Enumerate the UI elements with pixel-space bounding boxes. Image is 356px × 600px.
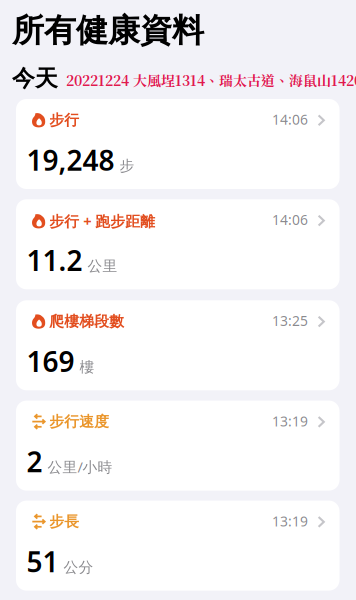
staticText: 步長	[49, 513, 79, 531]
staticText: 所有健康資料	[12, 11, 204, 50]
button[interactable]: 步行	[16, 99, 339, 189]
staticText: 14:06	[272, 210, 308, 229]
staticText: 11.2	[26, 242, 82, 279]
staticText: 公里/小時	[47, 457, 112, 477]
staticText: 公里	[87, 257, 117, 275]
staticText: 爬樓梯段數	[49, 312, 124, 330]
staticText: 2	[26, 443, 42, 480]
button[interactable]: 步行速度	[16, 401, 339, 491]
staticText: 13:25	[272, 311, 308, 330]
staticText: 步行速度	[49, 413, 109, 431]
staticText: 20221224 大風埕1314、瑞太古道、海鼠山1420	[66, 70, 356, 90]
button[interactable]: 步長	[16, 501, 339, 591]
staticText: 19,248	[26, 141, 114, 178]
button[interactable]: 爬樓梯段數	[16, 300, 339, 390]
staticText: 步行 + 跑步距離	[49, 211, 155, 231]
staticText: 169	[26, 343, 74, 380]
staticText: 步行	[49, 111, 79, 129]
staticText: 今天	[12, 64, 58, 92]
staticText: 樓	[79, 358, 94, 376]
staticText: 步	[119, 157, 134, 175]
staticText: 14:06	[272, 110, 308, 129]
staticText: 13:19	[272, 512, 308, 530]
staticText: 51	[26, 543, 58, 580]
staticText: 13:19	[272, 412, 308, 430]
staticText: 公分	[63, 558, 93, 577]
button[interactable]: 步行 + 跑步距離	[16, 199, 339, 289]
